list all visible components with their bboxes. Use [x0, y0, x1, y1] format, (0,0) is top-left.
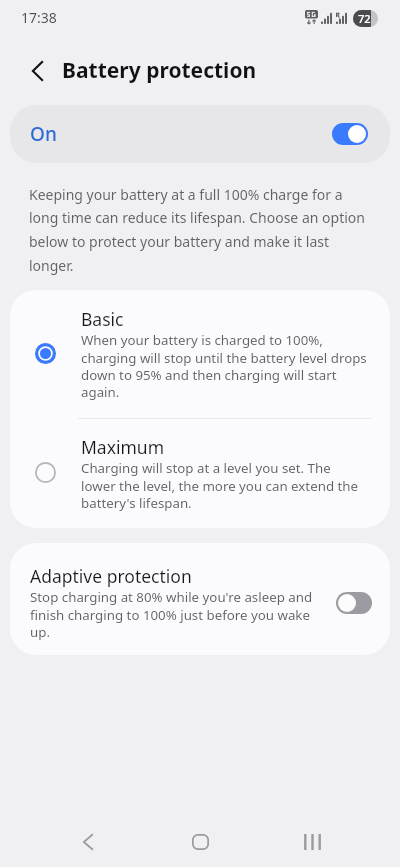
staticText: Basic — [81, 307, 124, 331]
staticText: On — [30, 121, 57, 147]
staticText: Charging will stop at a level you set. T… — [81, 459, 367, 512]
staticText: 17:38 — [21, 8, 57, 27]
staticText: 72 — [358, 11, 371, 26]
button[interactable]: Back — [62, 816, 114, 867]
button[interactable]: On — [10, 105, 390, 163]
button[interactable]: Maximum — [10, 419, 390, 528]
staticText: Keeping your battery at a full 100% char… — [29, 185, 369, 276]
button[interactable]: Adaptive protection — [10, 543, 390, 655]
button[interactable]: Navigate up — [19, 53, 55, 89]
staticText: When your battery is charged to 100%, ch… — [81, 331, 367, 401]
staticText: Stop charging at 80% while you're asleep… — [30, 588, 324, 641]
button[interactable]: Basic — [10, 290, 390, 418]
button[interactable]: Recent apps — [286, 816, 338, 867]
staticText: Adaptive protection — [30, 564, 192, 588]
button[interactable]: Home — [174, 816, 226, 867]
staticText: Maximum — [81, 435, 165, 459]
staticText: Battery protection — [62, 56, 257, 85]
